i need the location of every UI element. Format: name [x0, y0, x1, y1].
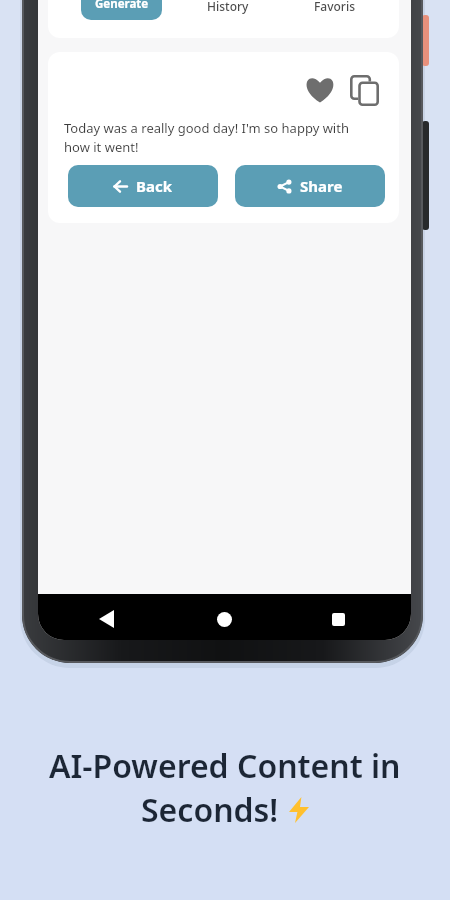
- staticText: Today was a really good day! I'm so happ…: [64, 119, 349, 155]
- button[interactable]: [350, 75, 379, 106]
- button[interactable]: Favoris: [304, 0, 365, 15]
- button[interactable]: [332, 613, 345, 626]
- staticText: AI-Powered Content in: [49, 744, 401, 788]
- staticText: History: [207, 0, 249, 14]
- staticText: Share: [300, 176, 343, 196]
- button[interactable]: Share: [235, 165, 385, 207]
- staticText: Back: [136, 176, 173, 196]
- button[interactable]: [99, 610, 114, 628]
- button[interactable]: [217, 612, 232, 627]
- button[interactable]: Generate: [81, 0, 162, 20]
- button[interactable]: [305, 76, 335, 104]
- staticText: Favoris: [314, 0, 356, 14]
- button[interactable]: Back: [68, 165, 218, 207]
- staticText: Generate: [95, 0, 149, 12]
- staticText: Seconds!: [141, 788, 279, 832]
- button[interactable]: History: [198, 0, 258, 15]
